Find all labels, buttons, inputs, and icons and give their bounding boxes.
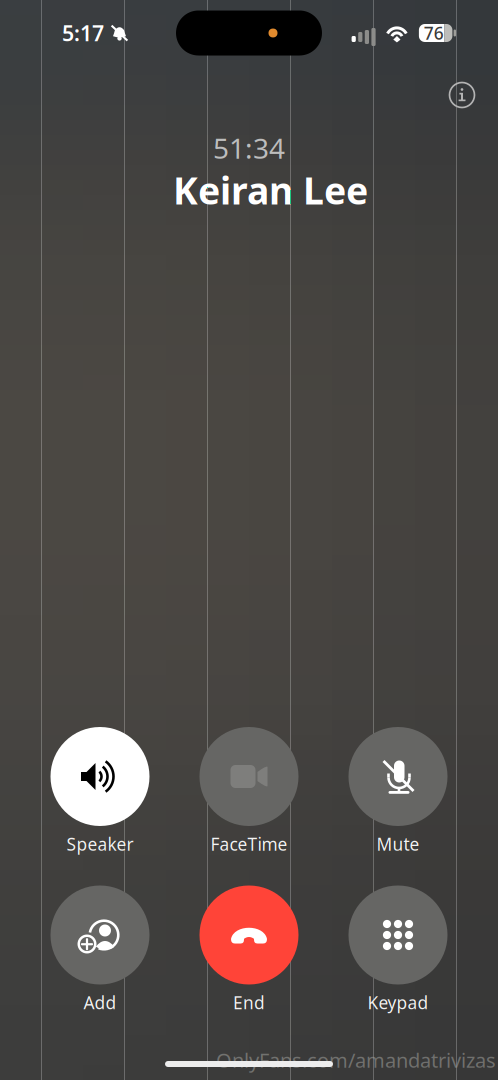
staticText: End <box>233 991 265 1014</box>
staticText: Keiran Lee <box>173 165 368 215</box>
button[interactable]: Keypad <box>332 885 464 1017</box>
staticText: Speaker <box>66 832 133 855</box>
staticText: OnlyFans.com/amandatrivizas <box>216 1047 496 1073</box>
staticText: Keypad <box>367 991 428 1014</box>
button[interactable]: End <box>183 885 315 1017</box>
button[interactable]: Call details <box>439 72 485 118</box>
staticText: 5:17 <box>62 19 104 47</box>
staticText: 76 <box>424 21 444 44</box>
button[interactable]: Mute <box>332 727 464 859</box>
button[interactable]: Speaker <box>34 727 166 859</box>
staticText: Add <box>83 991 116 1014</box>
button[interactable]: Add <box>34 885 166 1017</box>
staticText: Mute <box>376 832 419 855</box>
staticText: FaceTime <box>210 832 287 855</box>
staticText: 51:34 <box>213 129 285 167</box>
button[interactable]: FaceTime <box>183 727 315 859</box>
